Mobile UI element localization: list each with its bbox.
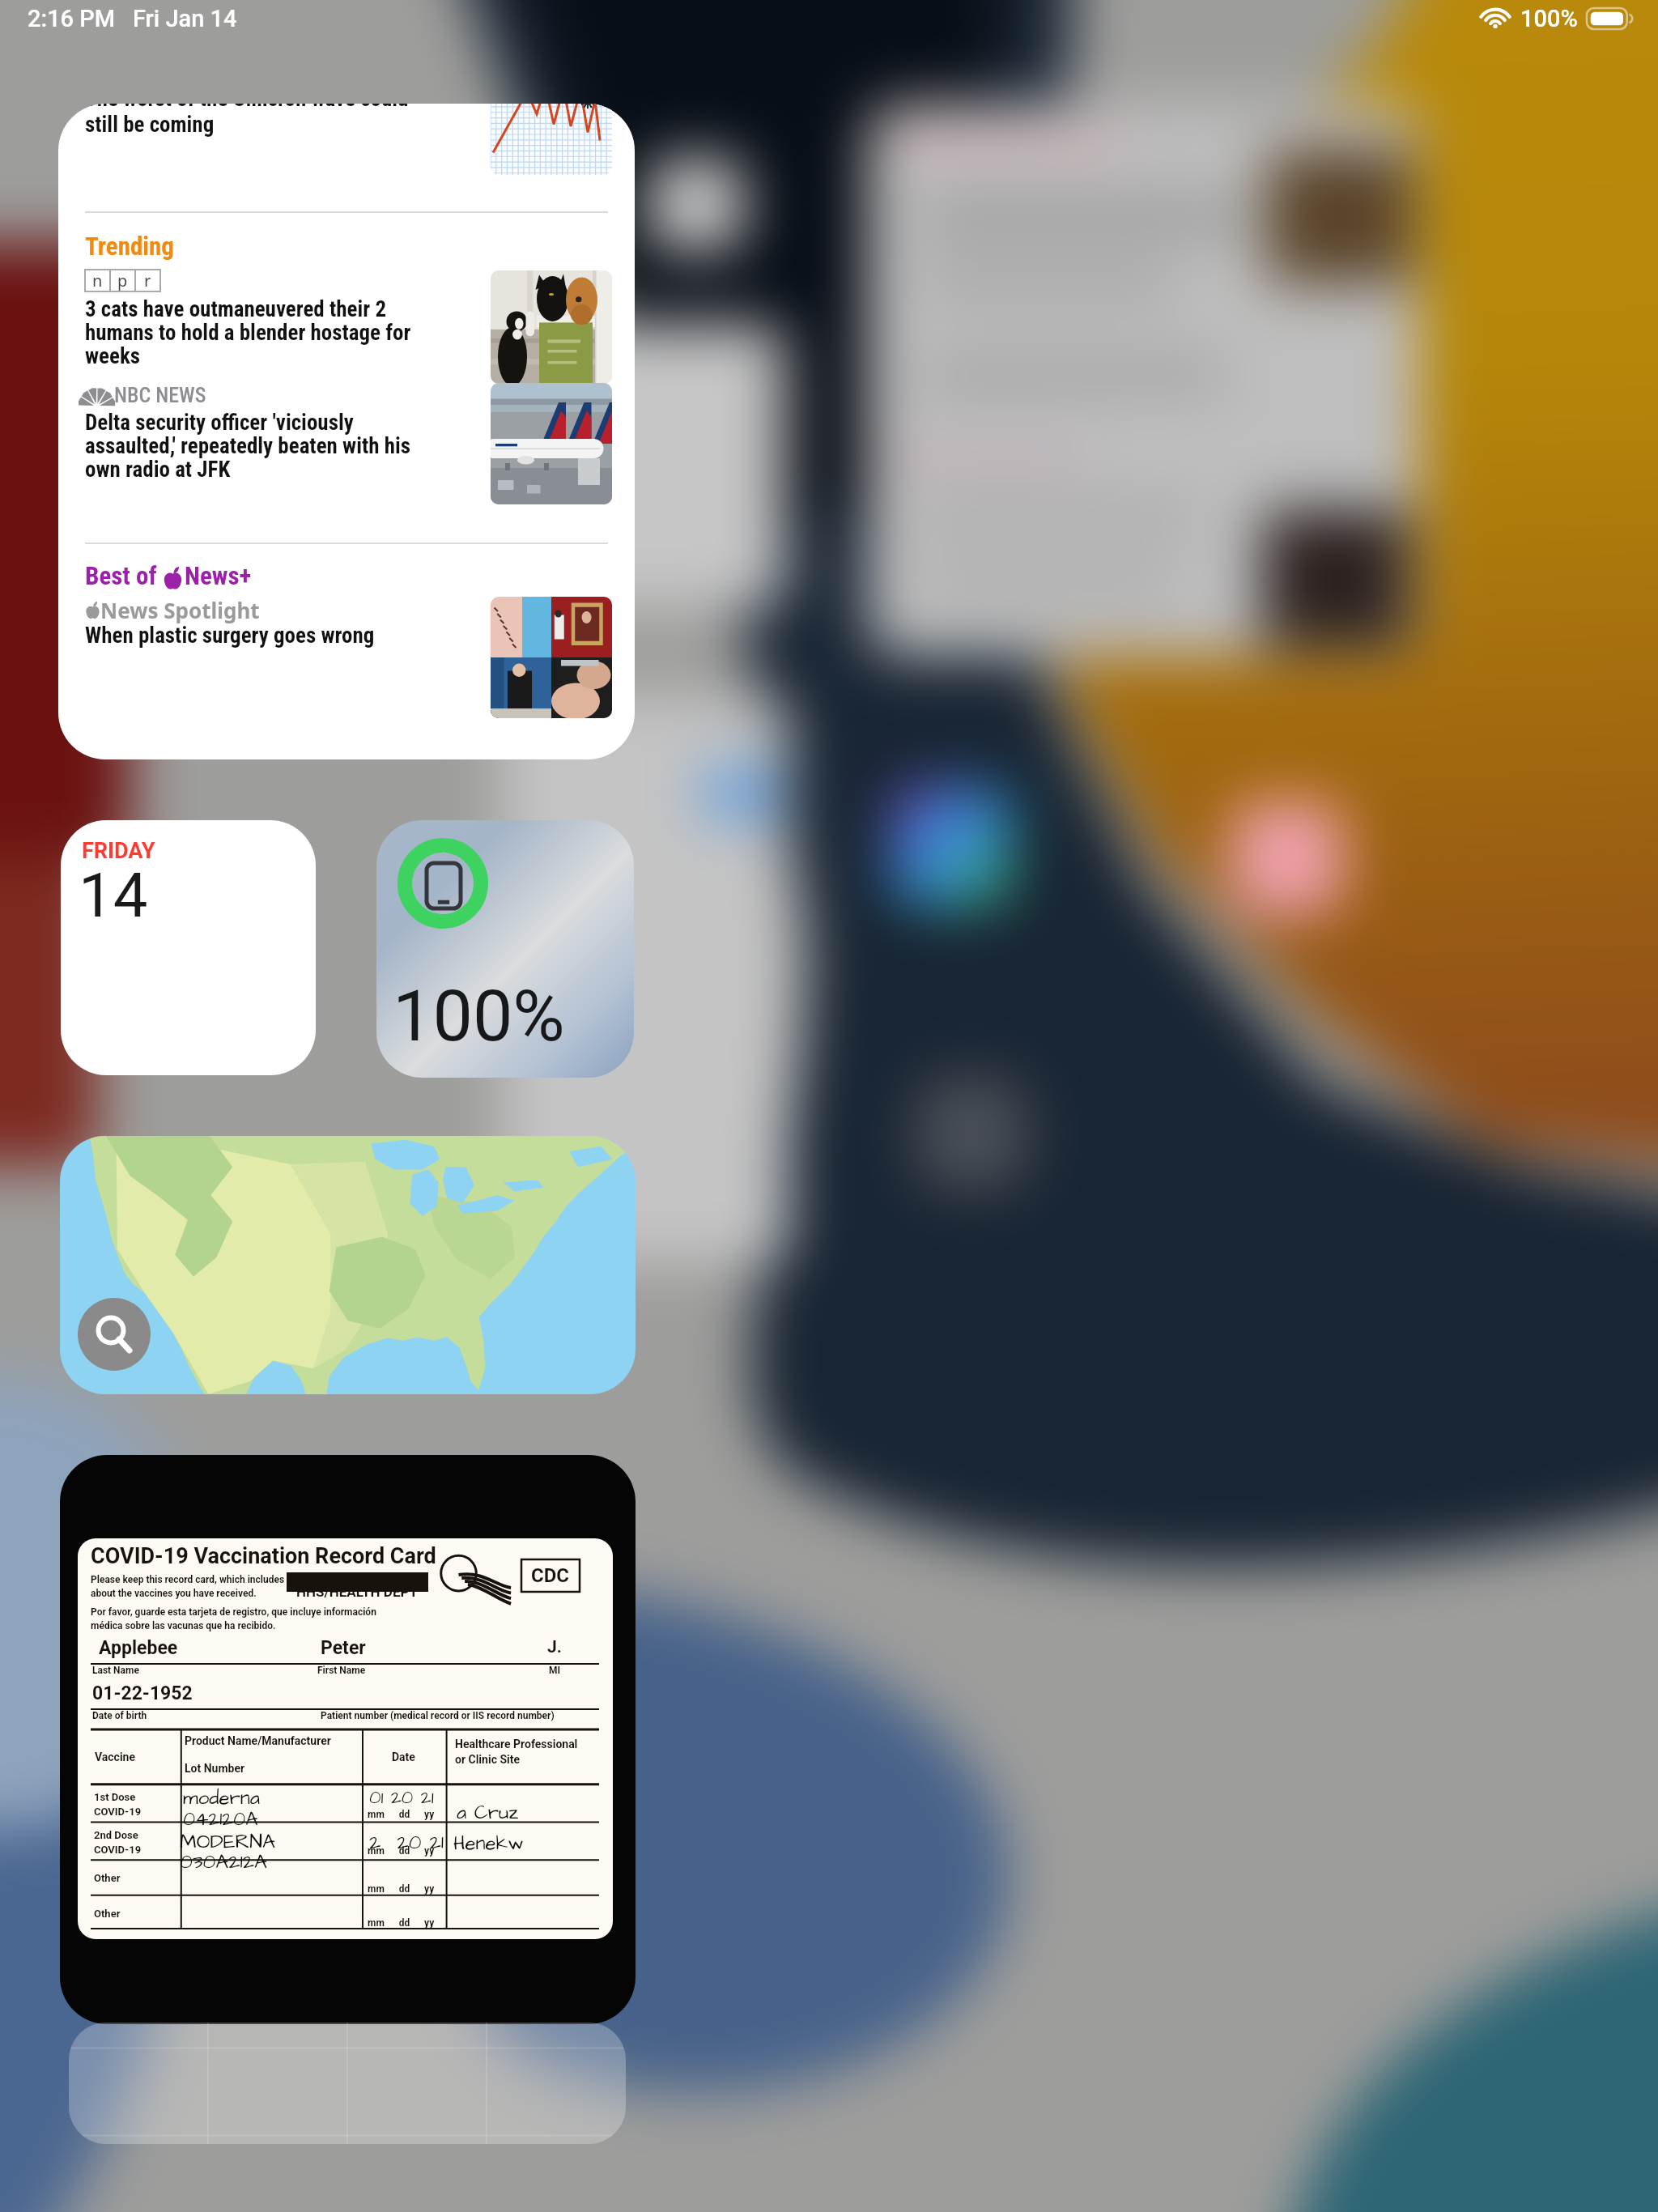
staticText: Healthcare Professional or Clinic Site [455, 1738, 578, 1766]
staticText: 100% [393, 974, 565, 1057]
staticText: Peter [321, 1637, 366, 1659]
staticText: NBC NEWS [114, 383, 206, 407]
button[interactable]: FRIDAY [61, 820, 316, 1075]
staticText: Lot Number [185, 1762, 245, 1775]
staticText: HHS/HEALTH DEPT [296, 1584, 418, 1600]
button[interactable]: News Spotlight [58, 592, 635, 725]
staticText: 2 20 21 [369, 1828, 444, 1857]
staticText: Trending [85, 232, 174, 261]
staticText: 042120A [183, 1806, 258, 1832]
staticText: Date of birth [92, 1710, 147, 1721]
staticText: 01-22-1952 [92, 1682, 193, 1704]
staticText: News Spotlight [100, 596, 260, 624]
staticText: Por favor, guarde esta tarjeta de regist… [91, 1606, 376, 1631]
staticText: The worst of the Omicron wave could stil… [85, 104, 409, 137]
staticText: n [92, 270, 103, 291]
staticText: MODERNA [180, 1827, 275, 1856]
button[interactable]: COVID-19 Vaccination Record Card [60, 1455, 636, 2024]
button[interactable]: Search [60, 1136, 636, 1394]
staticText: J. [547, 1637, 562, 1657]
staticText: Please keep this record card, which incl… [91, 1574, 375, 1599]
staticText: 01 20 21 [369, 1784, 434, 1810]
staticText: Patient number (medical record or IIS re… [321, 1710, 555, 1721]
staticText: Last Name [92, 1665, 139, 1676]
staticText: mm dd yy [368, 1809, 435, 1820]
staticText: COVID-19 Vaccination Record Card [91, 1543, 436, 1569]
staticText: Henekw [453, 1830, 524, 1857]
button[interactable]: The worst of the Omicron wave could stil… [58, 104, 635, 759]
staticText: 14 [79, 859, 148, 931]
button[interactable]: Search [78, 1298, 151, 1371]
staticText: First Name [317, 1665, 366, 1676]
staticText: Vaccine [95, 1750, 136, 1763]
staticText: 2nd Dose COVID-19 [94, 1829, 142, 1856]
staticText: FRIDAY [82, 838, 155, 864]
button[interactable]: 100% [376, 820, 634, 1078]
staticText: mm dd yy [368, 1883, 435, 1895]
staticText: 1st Dose COVID-19 [94, 1791, 142, 1818]
staticText: mm dd yy [368, 1845, 435, 1857]
staticText: CDC [531, 1564, 570, 1587]
staticText: p [117, 270, 128, 291]
button[interactable] [69, 2023, 626, 2144]
staticText: moderna [183, 1784, 260, 1811]
staticText: Product Name/Manufacturer [185, 1734, 331, 1747]
staticText: r [144, 270, 151, 291]
staticText: a Cruz [457, 1799, 519, 1826]
staticText: 3 cats have outmaneuvered their 2 humans… [85, 296, 411, 369]
button[interactable]: NBC NEWS [58, 379, 635, 508]
staticText: 030A212A [180, 1848, 268, 1876]
staticText: News+ [185, 561, 252, 590]
staticText: mm dd yy [368, 1917, 435, 1929]
button[interactable]: n [58, 266, 635, 379]
staticText: Other [94, 1872, 121, 1884]
staticText: Applebee [99, 1637, 178, 1659]
staticText: Fri Jan 14 [133, 5, 237, 32]
staticText: Other [94, 1908, 121, 1920]
button[interactable]: The worst of the Omicron wave could stil… [58, 104, 635, 205]
staticText: Best of [85, 561, 163, 590]
staticText: 2:16 PM [28, 5, 116, 32]
staticText: Delta security officer 'viciously assaul… [85, 410, 411, 483]
staticText: When plastic surgery goes wrong [85, 623, 375, 649]
staticText: MI [549, 1665, 561, 1676]
staticText: Date [392, 1750, 415, 1763]
staticText: 100% [1520, 5, 1578, 32]
